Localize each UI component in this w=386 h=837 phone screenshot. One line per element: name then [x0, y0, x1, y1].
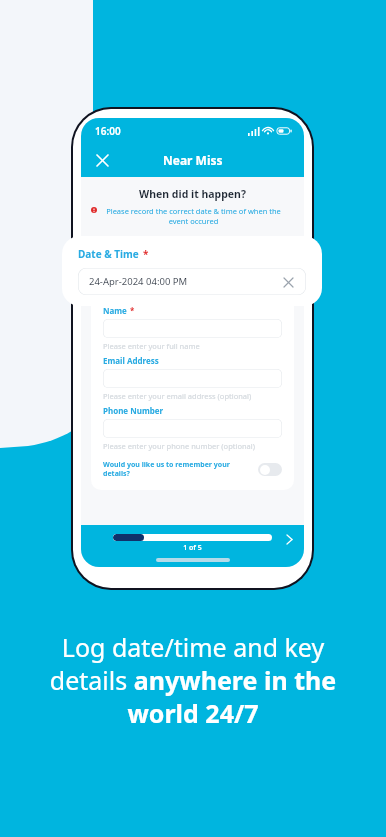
staticText: When did it happen? [81, 187, 304, 201]
staticText: Please enter your phone number (optional… [103, 441, 255, 451]
staticText: Please record the correct date & time of… [101, 206, 286, 226]
button[interactable]: Clear date and time [281, 275, 295, 289]
button[interactable]: Next [279, 529, 299, 549]
staticText: Log date/time and key details anywhere i… [24, 630, 362, 730]
staticText: Email Address [103, 355, 159, 366]
staticText: Near Miss [163, 152, 223, 168]
staticText: * [143, 247, 149, 261]
staticText: 24-Apr-2024 04:00 PM [89, 275, 188, 288]
button[interactable]: 24-Apr-2024 04:00 PM [78, 268, 306, 295]
button[interactable] [103, 319, 282, 338]
staticText: Please enter your email address (optiona… [103, 391, 252, 401]
staticText: 16:00 [95, 124, 121, 138]
staticText: Name [103, 305, 127, 316]
staticText: 1 of 5 [113, 543, 272, 553]
staticText: Please enter your full name [103, 341, 200, 351]
button[interactable] [103, 419, 282, 438]
staticText: Date & Time [78, 247, 139, 261]
staticText: Phone Number [103, 405, 164, 416]
button[interactable]: Close [90, 148, 114, 172]
button[interactable]: Would you like us to remember your detai… [103, 460, 282, 478]
staticText: Would you like us to remember your detai… [103, 460, 250, 478]
staticText: * [130, 305, 135, 316]
button[interactable] [103, 369, 282, 388]
